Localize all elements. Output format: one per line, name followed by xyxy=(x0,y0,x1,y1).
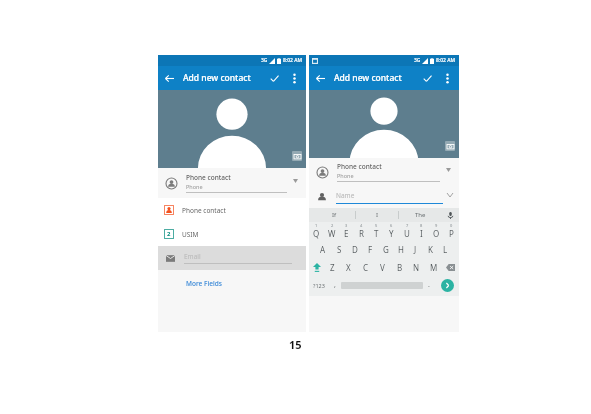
button[interactable]: 3 xyxy=(339,222,354,240)
staticText: I xyxy=(376,211,379,219)
staticText: O xyxy=(433,228,440,239)
staticText: 2 xyxy=(167,230,171,238)
button[interactable]: F xyxy=(363,240,378,258)
staticText: Email xyxy=(184,252,201,261)
staticText: T xyxy=(374,228,379,239)
staticText: Phone xyxy=(186,183,203,190)
staticText: 15 xyxy=(289,337,302,352)
button[interactable]: M xyxy=(425,258,442,276)
button[interactable]: 7 xyxy=(399,222,414,240)
button[interactable]: 2 xyxy=(158,222,306,246)
staticText: 2 xyxy=(331,223,334,228)
button[interactable]: 2 xyxy=(324,222,339,240)
button[interactable]: C xyxy=(357,258,374,276)
staticText: Q xyxy=(313,228,320,239)
staticText: H xyxy=(398,244,404,255)
button[interactable]: Shift xyxy=(309,258,324,276)
staticText: 8:02 AM xyxy=(436,57,456,64)
staticText: . xyxy=(428,280,430,290)
button[interactable]: Back xyxy=(158,67,180,89)
staticText: E xyxy=(344,228,349,239)
staticText: , xyxy=(334,280,336,290)
staticText: A xyxy=(320,244,326,255)
staticText: V xyxy=(380,262,385,273)
button[interactable]: J xyxy=(408,240,423,258)
button[interactable]: 6 xyxy=(384,222,399,240)
staticText: U xyxy=(404,228,410,239)
staticText: X xyxy=(346,262,351,273)
button[interactable]: Phone contact xyxy=(158,168,306,198)
button[interactable]: 0 xyxy=(444,222,459,240)
button[interactable]: 4 xyxy=(354,222,369,240)
staticText: 3 xyxy=(345,223,348,228)
staticText: 0 xyxy=(450,223,453,228)
staticText: Phone xyxy=(337,172,354,179)
button[interactable]: Voice input xyxy=(441,208,459,222)
button[interactable]: 9 xyxy=(429,222,444,240)
staticText: 4 xyxy=(360,223,363,228)
button[interactable]: Back xyxy=(309,67,331,89)
staticText: Add new contact xyxy=(183,72,251,84)
button[interactable]: Change photo xyxy=(292,151,302,161)
button[interactable]: S xyxy=(331,240,347,258)
button[interactable]: , xyxy=(329,276,341,294)
staticText: W xyxy=(328,228,336,239)
staticText: K xyxy=(428,244,433,255)
button[interactable]: Save xyxy=(264,68,284,88)
button[interactable]: Backspace xyxy=(442,258,459,276)
button[interactable]: A xyxy=(315,240,331,258)
staticText: 6 xyxy=(390,223,393,228)
staticText: The xyxy=(415,211,426,219)
button[interactable]: H xyxy=(393,240,408,258)
staticText: 8:02 AM xyxy=(283,57,303,64)
staticText: 3G xyxy=(261,57,268,64)
button[interactable]: Email xyxy=(158,246,306,270)
staticText: Phone contact xyxy=(186,173,231,182)
button[interactable]: D xyxy=(347,240,363,258)
button[interactable]: Name xyxy=(309,186,459,208)
staticText: Z xyxy=(330,262,335,273)
staticText: 9 xyxy=(435,223,438,228)
button[interactable]: Phone contact xyxy=(158,198,306,222)
button[interactable]: . xyxy=(423,276,435,294)
button[interactable]: I xyxy=(356,208,398,222)
staticText: Add new contact xyxy=(334,72,402,84)
button[interactable]: More options xyxy=(437,68,457,88)
staticText: J xyxy=(414,244,417,255)
button[interactable]: B xyxy=(391,258,408,276)
button[interactable]: Change photo xyxy=(445,141,455,151)
button[interactable]: Next xyxy=(435,276,459,294)
button[interactable]: V xyxy=(374,258,391,276)
button[interactable]: The xyxy=(399,208,441,222)
button[interactable]: 8 xyxy=(414,222,429,240)
button[interactable]: N xyxy=(408,258,425,276)
staticText: 1 xyxy=(315,223,318,228)
button[interactable]: Save xyxy=(417,68,437,88)
staticText: Name xyxy=(336,191,355,200)
button[interactable]: More Fields xyxy=(186,279,222,288)
button[interactable]: K xyxy=(423,240,438,258)
staticText: USIM xyxy=(182,230,199,239)
staticText: Y xyxy=(389,228,394,239)
staticText: I xyxy=(420,228,423,239)
button[interactable]: 1 xyxy=(309,222,324,240)
staticText: ?123 xyxy=(313,282,325,289)
button[interactable]: ?123 xyxy=(309,276,329,294)
button[interactable]: 5 xyxy=(369,222,384,240)
button[interactable]: If xyxy=(313,208,355,222)
staticText: R xyxy=(359,228,364,239)
staticText: More Fields xyxy=(186,279,222,288)
staticText: If xyxy=(332,211,337,219)
button[interactable]: More options xyxy=(284,68,304,88)
button[interactable]: G xyxy=(378,240,393,258)
staticText: G xyxy=(383,244,389,255)
staticText: N xyxy=(413,262,420,273)
button[interactable]: X xyxy=(340,258,357,276)
button[interactable]: Phone contact xyxy=(309,158,459,186)
button[interactable]: Z xyxy=(324,258,340,276)
button[interactable]: L xyxy=(438,240,453,258)
staticText: L xyxy=(443,244,448,255)
staticText: C xyxy=(363,262,369,273)
staticText: P xyxy=(449,228,454,239)
